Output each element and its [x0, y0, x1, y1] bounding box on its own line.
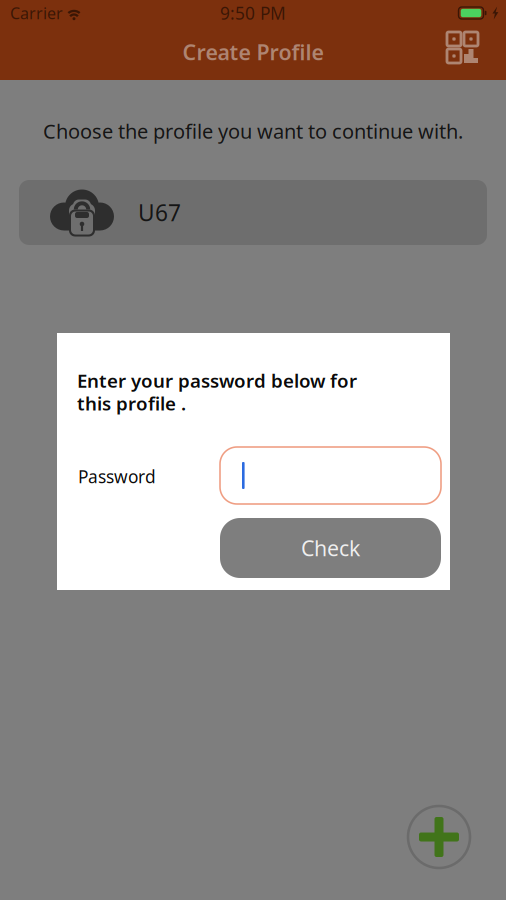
button[interactable]: U67: [19, 180, 487, 245]
staticText: Password: [78, 465, 156, 488]
button[interactable]: Check: [220, 518, 441, 578]
staticText: Carrier: [10, 2, 63, 24]
button[interactable]: Scan QR code: [437, 22, 488, 73]
staticText: Enter your password below for: [77, 368, 357, 393]
staticText: this profile .: [77, 391, 186, 416]
staticText: Choose the profile you want to continue …: [43, 118, 463, 144]
staticText: U67: [138, 197, 181, 227]
staticText: Create Profile: [182, 38, 323, 66]
staticText: Check: [301, 534, 360, 562]
button[interactable]: Add profile: [406, 804, 472, 870]
staticText: 9:50 PM: [220, 1, 286, 24]
